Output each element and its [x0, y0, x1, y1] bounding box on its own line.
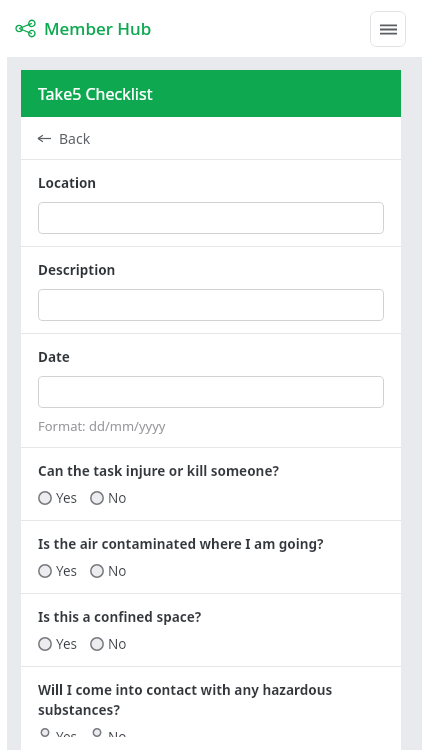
button[interactable]: No — [90, 489, 127, 507]
staticText: Will I come into contact with any hazard… — [38, 681, 384, 719]
button[interactable]: Yes — [38, 562, 78, 580]
staticText: Format: dd/mm/yyyy — [38, 417, 166, 435]
staticText: Is this a confined space? — [38, 608, 202, 626]
staticText: Yes — [56, 562, 78, 580]
staticText: Can the task injure or kill someone? — [38, 462, 279, 480]
staticText: No — [108, 635, 127, 653]
button[interactable]: Date — [38, 376, 384, 408]
button[interactable]: No — [90, 562, 127, 580]
staticText: Yes — [56, 489, 78, 507]
staticText: Yes — [56, 635, 78, 653]
button[interactable]: Yes — [38, 635, 78, 653]
button[interactable]: Back — [21, 117, 401, 159]
staticText: Location — [38, 174, 97, 192]
button[interactable]: Description — [38, 289, 384, 321]
button[interactable]: Location — [38, 202, 384, 234]
staticText: Take5 Checklist — [38, 83, 153, 105]
staticText: Yes — [56, 728, 78, 737]
staticText: No — [108, 562, 127, 580]
staticText: Back — [59, 129, 91, 148]
staticText: Description — [38, 261, 116, 279]
staticText: No — [108, 489, 127, 507]
button[interactable]: No — [90, 635, 127, 653]
button[interactable]: Yes — [38, 728, 78, 737]
button[interactable]: Yes — [38, 489, 78, 507]
staticText: Is the air contaminated where I am going… — [38, 535, 324, 553]
staticText: Member Hub — [44, 17, 152, 40]
button[interactable]: Menu — [370, 11, 406, 47]
staticText: No — [108, 728, 127, 737]
button[interactable]: No — [90, 728, 127, 737]
staticText: Date — [38, 348, 70, 366]
button[interactable]: Member Hub — [16, 17, 152, 40]
